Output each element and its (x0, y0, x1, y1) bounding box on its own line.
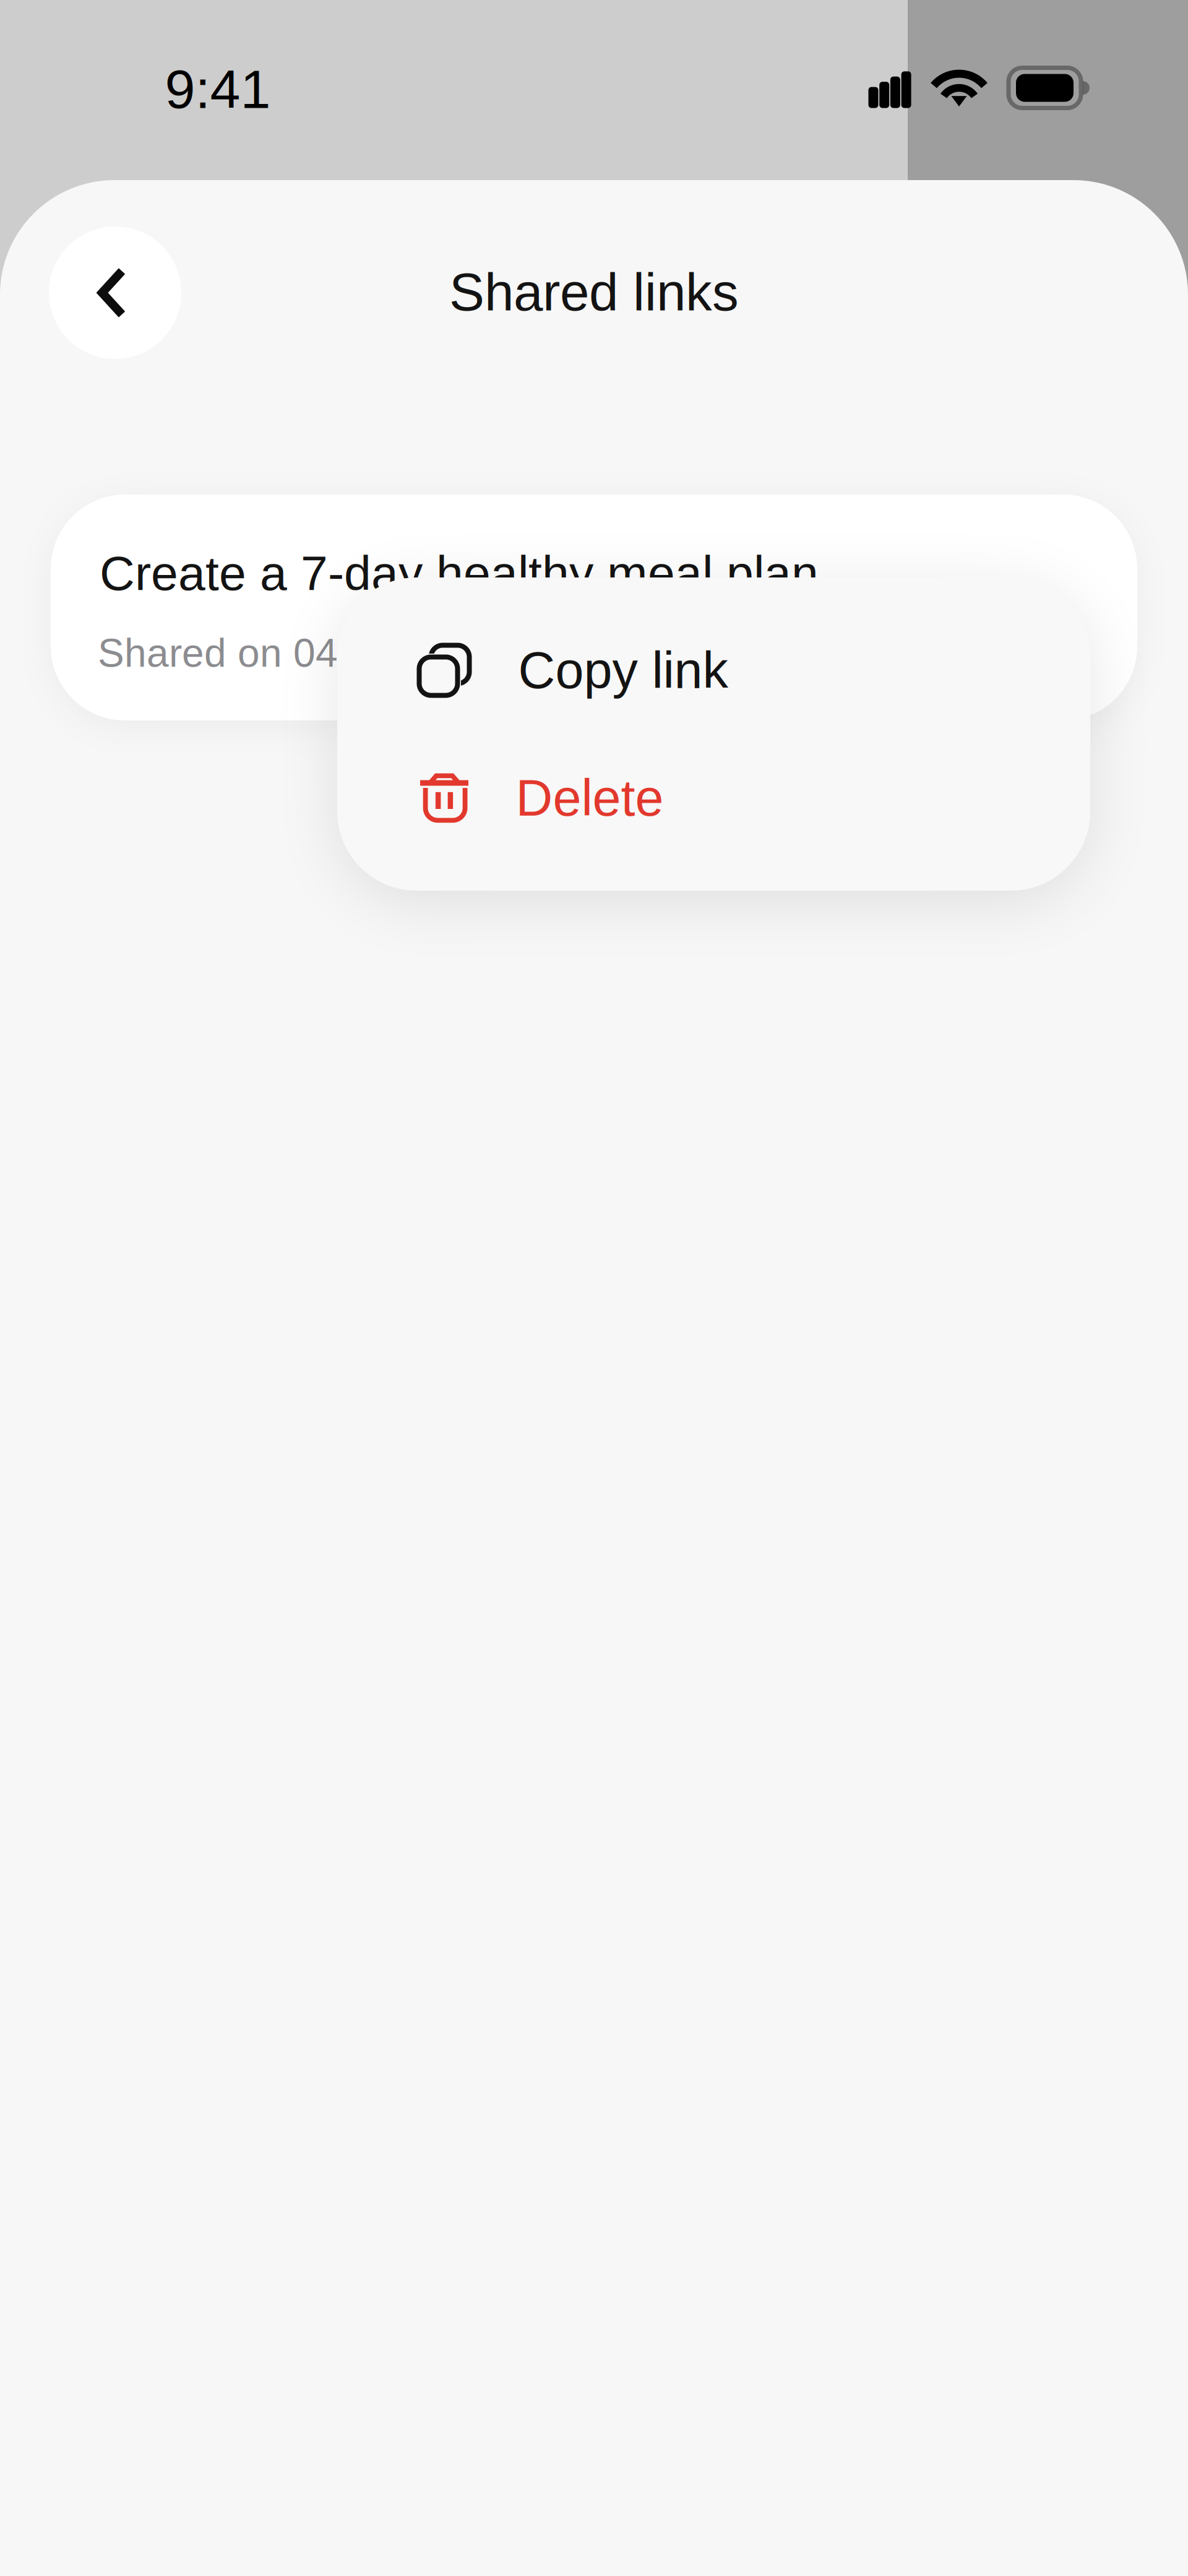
staticText: 9:41 (165, 59, 271, 120)
button[interactable]: Create a 7-day healthy meal plan (51, 495, 1137, 720)
staticText: Create a 7-day healthy meal plan (100, 546, 819, 600)
staticText: Shared links (449, 263, 739, 322)
button[interactable]: Copy link (337, 607, 1090, 734)
staticText: Copy link (518, 642, 728, 699)
staticText: Delete (516, 769, 664, 826)
button[interactable]: Back (49, 227, 181, 359)
staticText: Shared on 04/28/2025 (98, 631, 494, 675)
button[interactable]: Delete (337, 734, 1090, 862)
